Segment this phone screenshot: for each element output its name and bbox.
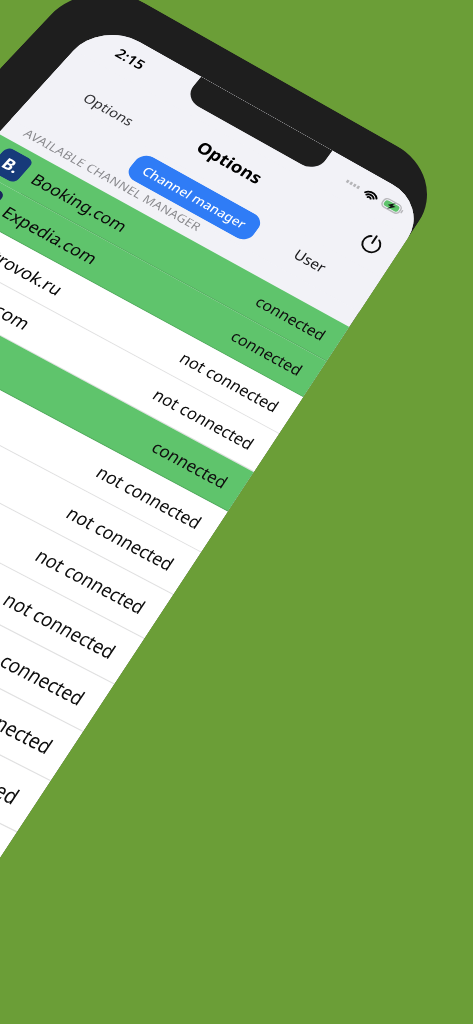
staticText: HRS.com: [57, 531, 129, 554]
staticText: Ostrovok.ru: [57, 267, 152, 290]
button[interactable]: E: [0, 344, 410, 388]
staticText: Agoda.com: [57, 311, 148, 334]
staticText: D: [26, 313, 37, 333]
button[interactable]: G: [0, 432, 410, 476]
button[interactable]: M: [0, 696, 410, 740]
staticText: connected: [315, 223, 394, 245]
staticText: Hostelworld: [57, 663, 154, 686]
staticText: connected: [315, 179, 394, 201]
button[interactable]: H: [0, 476, 410, 520]
staticText: N: [25, 753, 38, 773]
staticText: L: [27, 665, 36, 685]
staticText: Expedia.com: [57, 223, 159, 246]
staticText: O: [26, 797, 38, 817]
staticText: Bronevik.com: [57, 487, 166, 510]
button[interactable]: J: [0, 564, 410, 608]
button[interactable]: O: [0, 784, 410, 828]
staticText: Despegar: [57, 619, 135, 642]
staticText: ZenHotels: [57, 707, 138, 730]
button[interactable]: L: [0, 652, 410, 696]
button[interactable]: C: [0, 256, 410, 300]
button[interactable]: F: [0, 388, 410, 432]
staticText: C: [27, 269, 37, 289]
button[interactable]: N: [0, 740, 410, 784]
staticText: 2:15: [36, 12, 68, 34]
button[interactable]: Q: [0, 854, 410, 880]
staticText: connected: [315, 355, 394, 377]
staticText: Options: [168, 59, 243, 85]
staticText: Booking.com: [57, 179, 162, 202]
button[interactable]: K: [0, 608, 410, 652]
staticText: Options: [42, 76, 98, 96]
staticText: K: [27, 621, 37, 641]
staticText: AVAILABLE CHANNEL MANAGER: [20, 143, 223, 161]
button[interactable]: P: [0, 828, 410, 872]
staticText: Channel manager: [139, 116, 259, 135]
staticText: B.: [24, 179, 40, 202]
button[interactable]: User: [313, 108, 360, 142]
staticText: User: [319, 114, 354, 136]
button[interactable]: D: [0, 300, 410, 344]
staticText: not connected: [286, 399, 394, 421]
staticText: Ctrip.com: [57, 575, 135, 598]
staticText: F: [27, 401, 36, 421]
staticText: Airbnb.com: [57, 355, 150, 378]
button[interactable]: B.: [0, 168, 410, 212]
staticText: J: [29, 577, 34, 597]
button[interactable]: Expedia.com: [0, 212, 410, 256]
button[interactable]: Channel manager: [126, 109, 272, 142]
staticText: G: [26, 445, 37, 465]
staticText: Sutochno.ru: [57, 751, 155, 774]
button[interactable]: I: [0, 520, 410, 564]
staticText: TravelLine: [57, 443, 138, 466]
staticText: not connected: [286, 311, 394, 333]
staticText: not connected: [286, 267, 394, 289]
staticText: Hotels.com: [57, 399, 148, 422]
